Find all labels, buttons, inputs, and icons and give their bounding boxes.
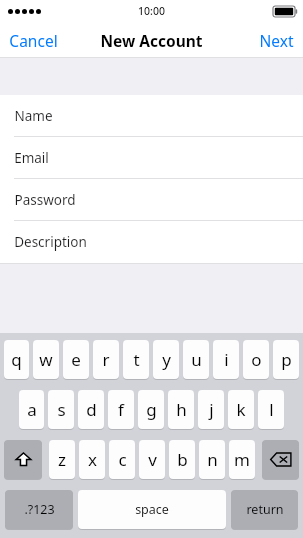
staticText: a <box>27 398 37 421</box>
button[interactable]: v <box>139 440 165 479</box>
button[interactable]: p <box>273 340 299 379</box>
staticText: m <box>234 448 250 471</box>
staticText: 10:00 <box>138 4 165 18</box>
button[interactable]: w <box>33 340 59 379</box>
staticText: s <box>57 398 66 421</box>
button[interactable]: x <box>79 440 105 479</box>
staticText: j <box>209 398 214 421</box>
button[interactable]: Shift <box>4 440 42 479</box>
button[interactable]: c <box>109 440 135 479</box>
staticText: c <box>118 448 127 471</box>
staticText: space <box>135 501 169 518</box>
staticText: Next <box>259 30 294 51</box>
button[interactable]: Email <box>0 137 303 179</box>
staticText: Description <box>14 233 87 251</box>
staticText: p <box>281 348 292 371</box>
staticText: l <box>269 398 274 421</box>
staticText: t <box>133 348 140 371</box>
button[interactable]: Password <box>0 179 303 221</box>
staticText: h <box>176 398 187 421</box>
button[interactable]: Backspace <box>262 440 299 479</box>
staticText: q <box>11 348 22 371</box>
button[interactable]: y <box>153 340 179 379</box>
staticText: Password <box>14 191 76 209</box>
button[interactable]: z <box>49 440 75 479</box>
staticText: n <box>207 448 218 471</box>
button[interactable]: Description <box>0 221 303 263</box>
button[interactable]: Next <box>250 22 303 58</box>
button[interactable]: d <box>78 390 104 429</box>
staticText: .?123 <box>24 501 55 518</box>
staticText: Name <box>14 107 53 125</box>
button[interactable]: e <box>63 340 89 379</box>
staticText: f <box>118 398 124 421</box>
button[interactable]: q <box>4 340 29 379</box>
button[interactable]: b <box>169 440 195 479</box>
staticText: g <box>146 398 157 421</box>
staticText: Email <box>14 149 49 167</box>
button[interactable]: .?123 <box>5 490 73 529</box>
staticText: w <box>39 348 53 371</box>
button[interactable]: f <box>108 390 134 429</box>
button[interactable]: n <box>199 440 225 479</box>
staticText: z <box>58 448 66 471</box>
button[interactable]: u <box>183 340 209 379</box>
button[interactable]: return <box>231 490 298 529</box>
staticText: Cancel <box>9 30 58 51</box>
staticText: x <box>88 448 97 471</box>
button[interactable]: Name <box>0 95 303 137</box>
staticText: New Account <box>100 30 203 51</box>
button[interactable]: r <box>93 340 119 379</box>
staticText: u <box>191 348 202 371</box>
button[interactable]: a <box>19 390 44 429</box>
button[interactable]: m <box>229 440 255 479</box>
button[interactable]: k <box>228 390 254 429</box>
button[interactable]: g <box>138 390 164 429</box>
staticText: y <box>162 348 171 371</box>
staticText: d <box>86 398 97 421</box>
staticText: b <box>177 448 188 471</box>
staticText: e <box>71 348 81 371</box>
button[interactable]: i <box>213 340 239 379</box>
button[interactable]: t <box>123 340 149 379</box>
staticText: o <box>251 348 262 371</box>
button[interactable]: Cancel <box>0 22 67 58</box>
staticText: return <box>246 501 284 518</box>
staticText: v <box>148 448 157 471</box>
button[interactable]: space <box>78 490 226 529</box>
staticText: k <box>236 398 246 421</box>
button[interactable]: h <box>168 390 194 429</box>
staticText: r <box>102 348 110 371</box>
button[interactable]: o <box>243 340 269 379</box>
button[interactable]: j <box>198 390 224 429</box>
button[interactable]: s <box>48 390 74 429</box>
staticText: i <box>224 348 229 371</box>
button[interactable]: l <box>258 390 284 429</box>
